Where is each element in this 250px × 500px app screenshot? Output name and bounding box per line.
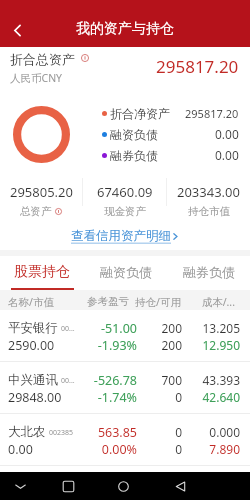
staticText: 总资产 bbox=[20, 205, 52, 218]
button[interactable]: 融资负债 bbox=[84, 256, 167, 290]
staticText: -526.78 bbox=[92, 372, 137, 389]
staticText: 43.393 bbox=[182, 372, 240, 388]
staticText: 我的资产与持仓 bbox=[76, 20, 174, 38]
staticText: 00... bbox=[61, 376, 75, 386]
staticText: 人民币CNY bbox=[10, 71, 63, 85]
staticText: 0.00 bbox=[215, 147, 239, 163]
staticText: 折合净资产 bbox=[110, 106, 170, 121]
staticText: 00... bbox=[61, 324, 75, 334]
staticText: 持仓市值 bbox=[188, 205, 230, 218]
staticText: 融资负债 bbox=[110, 127, 158, 142]
button[interactable]: 股票持仓 bbox=[0, 256, 84, 290]
button[interactable]: Hide keyboard bbox=[6, 472, 34, 500]
staticText: 现金资产 bbox=[104, 205, 146, 218]
staticText: 563.85 bbox=[92, 424, 137, 441]
staticText: 平安银行 bbox=[8, 320, 58, 336]
staticText: 0 bbox=[137, 389, 182, 405]
staticText: 295817.20 bbox=[185, 106, 239, 121]
staticText: 295817.20 bbox=[156, 55, 239, 78]
staticText: 0.000 bbox=[182, 424, 240, 440]
staticText: 2590.00 bbox=[8, 337, 55, 354]
staticText: 查看信用资产明细 bbox=[71, 228, 171, 244]
staticText: -1.93% bbox=[92, 337, 137, 354]
staticText: 67460.09 bbox=[97, 183, 153, 201]
staticText: 200 bbox=[137, 320, 182, 336]
staticText: 29848.00 bbox=[8, 389, 62, 406]
staticText: 7.890 bbox=[182, 441, 240, 457]
staticText: 12.950 bbox=[182, 337, 240, 353]
button[interactable]: 大北农 bbox=[0, 414, 250, 465]
staticText: 大北农 bbox=[8, 424, 46, 440]
button[interactable]: 融券负债 bbox=[167, 256, 250, 290]
button[interactable]: 查看信用资产明细 bbox=[0, 222, 250, 250]
staticText: 持仓/可用 bbox=[129, 295, 181, 309]
staticText: 成本/... bbox=[181, 295, 235, 309]
button[interactable]: Back bbox=[166, 472, 194, 500]
staticText: 0.00% bbox=[92, 441, 137, 458]
button[interactable]: 平安银行 bbox=[0, 310, 250, 361]
staticText: -51.00 bbox=[92, 320, 137, 337]
staticText: 0.00 bbox=[8, 441, 33, 458]
button[interactable]: Home bbox=[109, 472, 137, 500]
staticText: 203343.00 bbox=[177, 183, 240, 201]
staticText: 融券负债 bbox=[110, 148, 158, 163]
staticText: 融资负债 bbox=[100, 264, 152, 280]
staticText: 700 bbox=[137, 372, 182, 388]
staticText: 002385 bbox=[49, 428, 74, 438]
staticText: 0 bbox=[137, 424, 182, 440]
staticText: 股票持仓 bbox=[14, 263, 70, 281]
staticText: -1.74% bbox=[92, 389, 137, 406]
staticText: 融券负债 bbox=[183, 264, 235, 280]
button[interactable]: Back bbox=[2, 15, 32, 45]
button[interactable]: Recents bbox=[54, 472, 82, 500]
staticText: 42.640 bbox=[182, 389, 240, 405]
staticText: 0 bbox=[137, 441, 182, 457]
staticText: 折合总资产 bbox=[10, 51, 75, 67]
staticText: 13.205 bbox=[182, 320, 240, 336]
staticText: 中兴通讯 bbox=[8, 372, 58, 388]
staticText: 参考盈亏 bbox=[79, 295, 129, 308]
button[interactable]: 中兴通讯 bbox=[0, 362, 250, 413]
staticText: 200 bbox=[137, 337, 182, 353]
staticText: 295805.20 bbox=[10, 183, 73, 201]
staticText: 名称/市值 bbox=[8, 295, 79, 309]
staticText: 0.00 bbox=[215, 126, 239, 142]
